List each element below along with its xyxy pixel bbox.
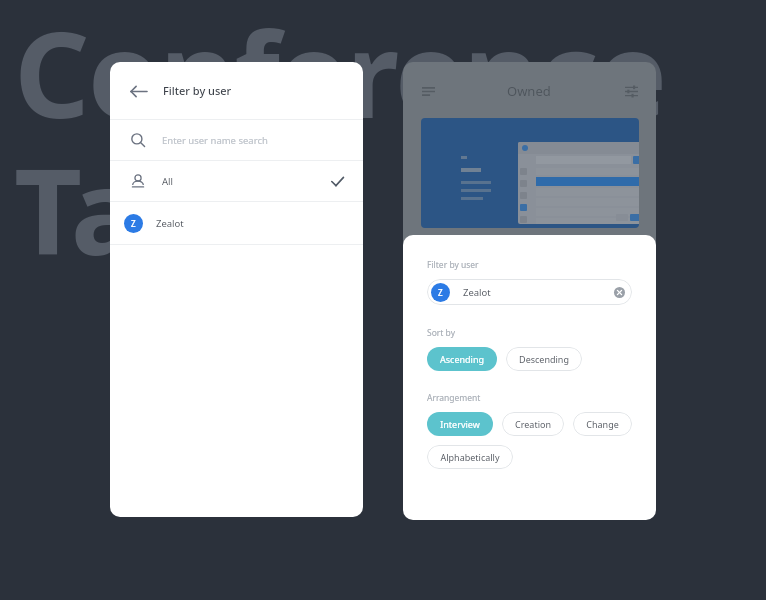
staticText: Arrangement bbox=[427, 392, 481, 404]
staticText: Interview bbox=[440, 418, 480, 430]
staticText: Ascending bbox=[440, 353, 484, 365]
staticText: Filter by user bbox=[427, 259, 479, 271]
staticText: Z bbox=[438, 287, 443, 298]
button[interactable]: Interview bbox=[427, 412, 493, 436]
button[interactable]: Filter bbox=[621, 81, 641, 101]
staticText: Conference bbox=[14, 0, 666, 153]
staticText: Talk bbox=[14, 129, 244, 290]
button[interactable]: All bbox=[110, 161, 363, 201]
staticText: Zealot bbox=[156, 217, 184, 230]
staticText: Alphabetically bbox=[440, 451, 500, 463]
staticText: All bbox=[162, 175, 173, 188]
button[interactable]: Clear bbox=[612, 285, 626, 299]
button[interactable]: Menu bbox=[418, 81, 438, 101]
staticText: Sort by bbox=[427, 327, 455, 339]
staticText: Filter by user bbox=[163, 83, 232, 98]
staticText: Creation bbox=[515, 418, 551, 430]
staticText: Enter user name search bbox=[162, 134, 268, 147]
staticText: Owned bbox=[507, 82, 551, 100]
button[interactable] bbox=[421, 118, 639, 228]
staticText: Descending bbox=[519, 353, 569, 365]
staticText: Zealot bbox=[463, 286, 491, 299]
button[interactable]: Ascending bbox=[427, 347, 497, 371]
button[interactable]: Change bbox=[573, 412, 632, 436]
button[interactable]: Enter user name search bbox=[110, 120, 363, 160]
button[interactable]: Descending bbox=[506, 347, 582, 371]
button[interactable]: Z bbox=[427, 279, 632, 305]
button[interactable]: Back bbox=[110, 62, 363, 119]
button[interactable]: Back bbox=[125, 78, 151, 104]
button[interactable]: Creation bbox=[502, 412, 564, 436]
staticText: Z bbox=[131, 218, 136, 229]
button[interactable]: Z bbox=[110, 202, 363, 244]
staticText: Change bbox=[586, 418, 619, 430]
button[interactable]: Alphabetically bbox=[427, 445, 513, 469]
